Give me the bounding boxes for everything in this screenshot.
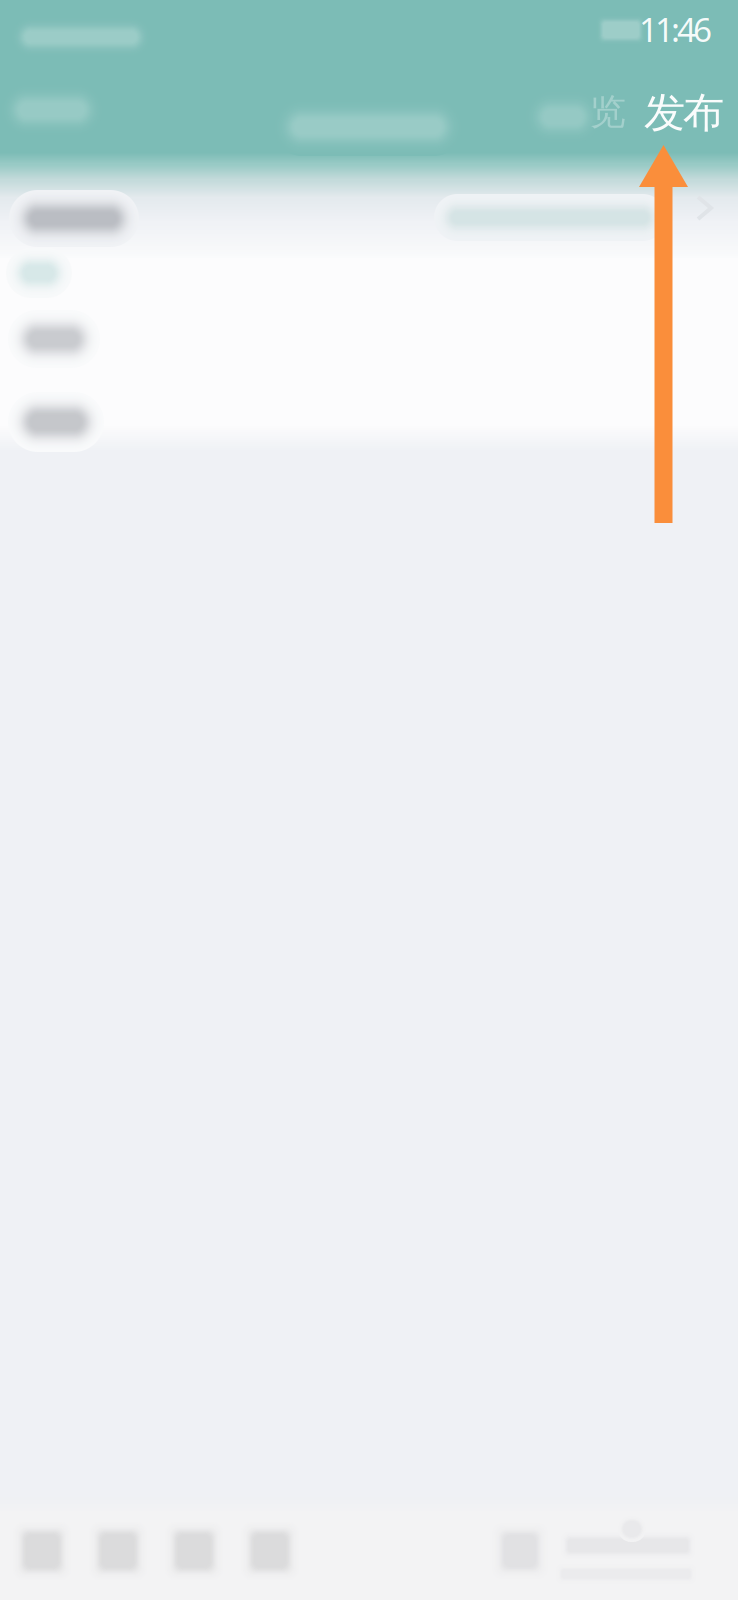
button[interactable]: Editor tool bbox=[4, 1506, 80, 1596]
staticText: 发布 bbox=[644, 88, 724, 138]
button[interactable]: 发布 bbox=[644, 67, 738, 159]
button[interactable]: Editor tool bbox=[232, 1506, 308, 1596]
button[interactable]: More bbox=[478, 1506, 562, 1596]
staticText: 11:46 bbox=[639, 7, 712, 51]
staticText: 览 bbox=[590, 90, 626, 134]
button[interactable]: Editor tool bbox=[80, 1506, 156, 1596]
button[interactable]: 取消 bbox=[0, 64, 150, 156]
button[interactable]: Editor tool bbox=[156, 1506, 232, 1596]
button[interactable]: 选择活动 bbox=[0, 180, 738, 258]
button[interactable]: 预览 bbox=[518, 64, 644, 156]
